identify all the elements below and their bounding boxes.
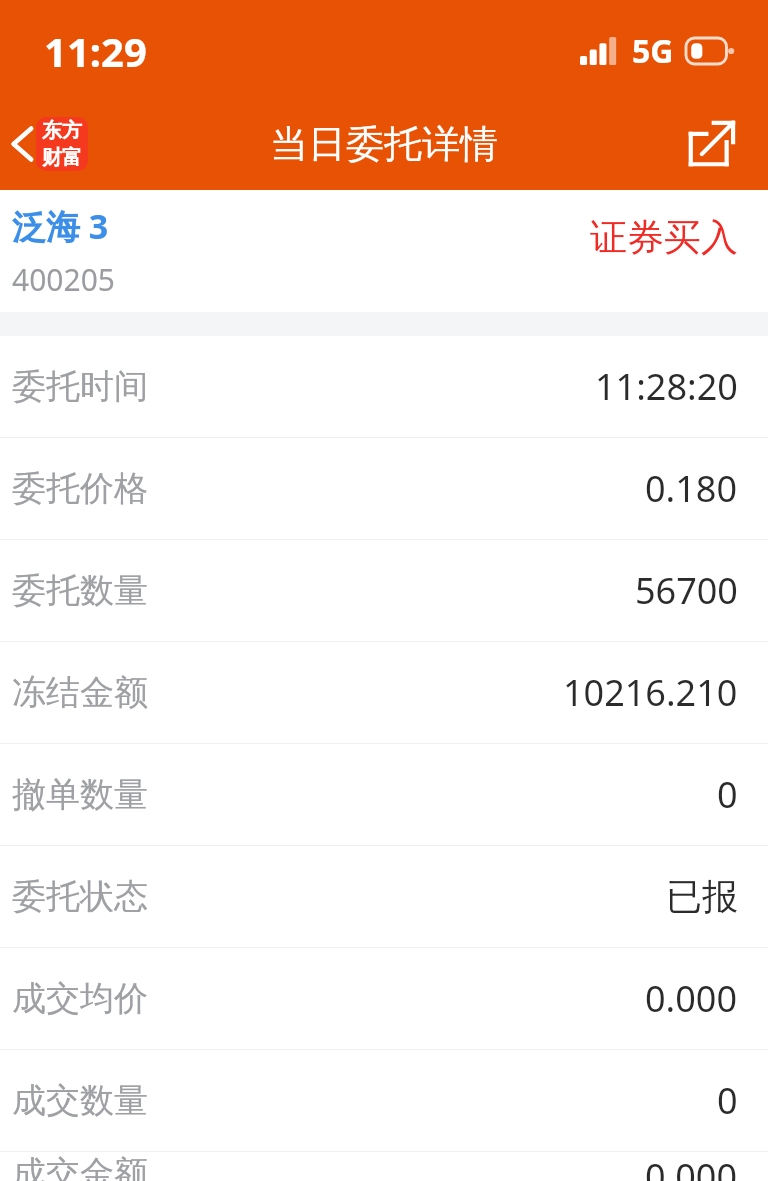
button[interactable]: 东方财富 (36, 117, 88, 171)
button[interactable]: 泛海 3 (0, 190, 768, 312)
staticText: 0 (717, 770, 738, 819)
button[interactable]: 成交金额 (0, 1152, 768, 1181)
staticText: 当日委托详情 (270, 120, 498, 168)
staticText: 0.000 (645, 974, 738, 1023)
button[interactable]: 成交均价 (0, 948, 768, 1049)
staticText: 委托状态 (12, 875, 148, 918)
staticText: 冻结金额 (12, 671, 148, 714)
button[interactable]: 委托时间 (0, 336, 768, 437)
staticText: 委托价格 (12, 467, 148, 510)
staticText: 财富 (42, 145, 82, 170)
staticText: 东方 (42, 118, 82, 143)
staticText: 0.000 (645, 1152, 738, 1181)
staticText: 成交均价 (12, 977, 148, 1020)
button[interactable]: Back (0, 109, 44, 179)
staticText: 0 (717, 1076, 738, 1125)
staticText: 委托时间 (12, 365, 148, 408)
button[interactable]: 撤单数量 (0, 744, 768, 845)
staticText: 5G (632, 29, 674, 73)
button[interactable]: 成交数量 (0, 1050, 768, 1151)
staticText: 0.180 (645, 464, 738, 513)
staticText: 证券买入 (0, 214, 738, 261)
button[interactable]: 冻结金额 (0, 642, 768, 743)
staticText: 委托数量 (12, 569, 148, 612)
button[interactable]: Share (680, 113, 742, 175)
button[interactable]: 委托价格 (0, 438, 768, 539)
staticText: 11:28:20 (595, 362, 738, 411)
staticText: 56700 (635, 566, 738, 615)
button[interactable]: 委托数量 (0, 540, 768, 641)
staticText: 400205 (12, 259, 115, 300)
staticText: 10216.210 (563, 668, 738, 717)
staticText: 已报 (666, 874, 738, 919)
staticText: 成交金额 (12, 1152, 148, 1181)
button[interactable]: 委托状态 (0, 846, 768, 947)
staticText: 成交数量 (12, 1079, 148, 1122)
staticText: 11:29 (44, 24, 147, 78)
staticText: 撤单数量 (12, 773, 148, 816)
staticText: 泛海 3 (12, 203, 109, 249)
